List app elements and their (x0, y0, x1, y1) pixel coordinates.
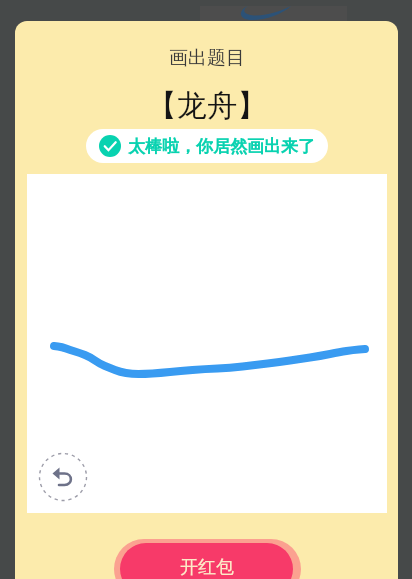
staticText: 开红包 (180, 556, 234, 579)
staticText: 画出题目 (169, 46, 245, 70)
button[interactable]: 开红包 (120, 543, 293, 579)
staticText: 太棒啦，你居然画出来了 (128, 136, 315, 157)
staticText: 【龙舟】 (147, 87, 267, 125)
button[interactable]: 太棒啦，你居然画出来了 (86, 129, 328, 163)
button[interactable]: Undo (39, 453, 87, 501)
